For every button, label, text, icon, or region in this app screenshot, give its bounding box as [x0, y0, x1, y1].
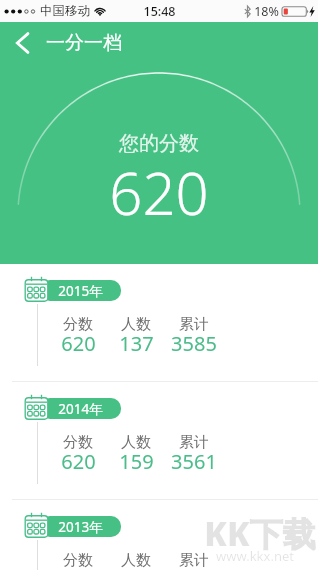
- button[interactable]: Back: [0, 22, 44, 64]
- staticText: 18%: [254, 3, 279, 20]
- staticText: 累计: [179, 433, 209, 452]
- staticText: 人数: [121, 433, 151, 452]
- staticText: 分数: [63, 551, 93, 570]
- staticText: 2014年: [58, 400, 103, 418]
- staticText: 137: [119, 330, 154, 357]
- staticText: 159: [119, 448, 154, 475]
- staticText: 620: [109, 153, 209, 232]
- staticText: 2013年: [58, 518, 103, 536]
- staticText: www.kkx.net: [216, 547, 294, 565]
- staticText: 人数: [121, 315, 151, 334]
- staticText: 620: [61, 330, 96, 357]
- staticText: 分数: [63, 315, 93, 334]
- staticText: 一分一档: [46, 31, 122, 55]
- button[interactable]: 2015年: [0, 264, 318, 381]
- staticText: 累计: [179, 315, 209, 334]
- staticText: 620: [61, 448, 96, 475]
- staticText: 累计: [179, 551, 209, 570]
- button[interactable]: 2013年: [0, 500, 318, 570]
- staticText: 15:48: [143, 3, 176, 20]
- staticText: 3585: [171, 330, 217, 357]
- staticText: 分数: [63, 433, 93, 452]
- button[interactable]: 2014年: [0, 382, 318, 499]
- staticText: 2015年: [58, 282, 103, 300]
- staticText: KK下载: [204, 511, 316, 556]
- staticText: 中国移动: [40, 3, 90, 19]
- staticText: 3561: [171, 448, 217, 475]
- staticText: 人数: [121, 551, 151, 570]
- staticText: 您的分数: [119, 131, 199, 156]
